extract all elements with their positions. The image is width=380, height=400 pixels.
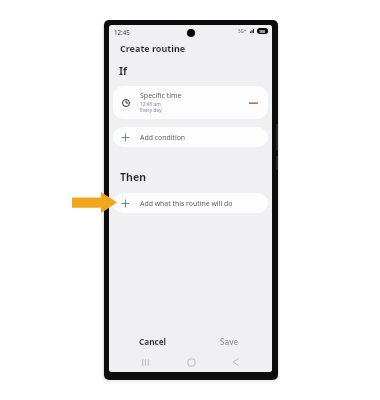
staticText: If — [119, 64, 128, 78]
staticText: 5G+ — [238, 28, 247, 34]
button[interactable]: Cancel — [109, 332, 190, 352]
staticText: 100 — [259, 29, 266, 34]
staticText: Every day — [140, 107, 162, 114]
staticText: 12:45 — [114, 28, 130, 36]
staticText: Save — [220, 336, 239, 347]
staticText: Create routine — [120, 42, 186, 54]
staticText: Add what this routine will do — [140, 199, 233, 208]
button[interactable]: Specific time — [113, 86, 268, 119]
button[interactable]: Add condition — [113, 127, 268, 147]
button[interactable]: Save — [190, 332, 272, 352]
button[interactable]: Recent apps — [137, 356, 153, 368]
button[interactable]: Remove condition — [246, 96, 260, 110]
button[interactable]: Home — [183, 356, 199, 368]
staticText: 12:45 am — [140, 101, 161, 108]
button[interactable]: Add what this routine will do — [113, 193, 268, 213]
staticText: Specific time — [140, 91, 182, 101]
staticText: Add condition — [140, 133, 186, 142]
button[interactable]: Back — [228, 356, 244, 368]
staticText: Cancel — [139, 336, 167, 347]
staticText: Then — [120, 170, 146, 184]
